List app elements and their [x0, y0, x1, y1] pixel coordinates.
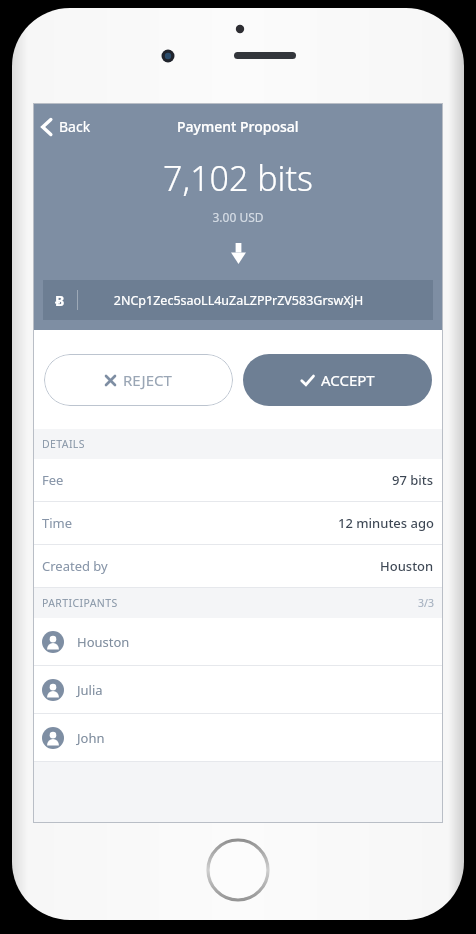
other: Accept	[301, 375, 314, 386]
staticText: 2NCp1Zec5saoLL4uZaLZPPrZV583GrswXjH	[78, 292, 399, 309]
staticText: REJECT	[123, 370, 172, 390]
button[interactable]: Fee	[33, 459, 443, 501]
staticText: 97 bits	[392, 471, 434, 489]
staticText: 3.00 USD	[33, 209, 443, 225]
staticText: DETAILS	[42, 437, 85, 451]
staticText: Houston	[77, 633, 130, 651]
staticText: Time	[42, 514, 73, 532]
staticText: Houston	[380, 557, 434, 575]
button[interactable]: Reject	[44, 354, 233, 406]
button[interactable]: Julia	[33, 666, 443, 713]
staticText: Back	[59, 117, 91, 136]
button[interactable]: Houston	[33, 618, 443, 665]
staticText: Fee	[42, 471, 64, 489]
staticText: 12 minutes ago	[338, 514, 434, 532]
button[interactable]: Back	[33, 113, 101, 140]
staticText: 7,102 bits	[33, 155, 443, 201]
staticText: ACCEPT	[321, 370, 375, 390]
button[interactable]: John	[33, 714, 443, 761]
staticText: Ƀ	[55, 291, 65, 310]
staticText: Julia	[77, 681, 103, 699]
button[interactable]: Accept	[243, 354, 432, 406]
staticText: 3/3	[418, 596, 434, 610]
staticText: PARTICIPANTS	[42, 596, 118, 610]
staticText: Created by	[42, 557, 108, 575]
button[interactable]: Ƀ	[43, 280, 433, 320]
staticText: John	[77, 729, 105, 747]
other: Reject	[105, 375, 116, 386]
button[interactable]: Created by	[33, 545, 443, 587]
button[interactable]: Time	[33, 502, 443, 544]
staticText: Payment Proposal	[177, 117, 299, 136]
